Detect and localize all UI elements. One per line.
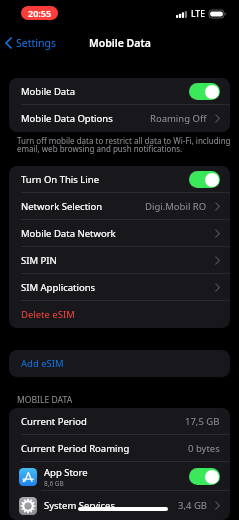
button[interactable]: App Store xyxy=(9,462,230,491)
button[interactable]: Delete eSIM xyxy=(9,301,230,328)
staticText: 17,5 GB xyxy=(185,415,220,428)
staticText: Mobile Data xyxy=(21,85,75,98)
button[interactable]: System Services xyxy=(9,491,230,520)
staticText: SIM Applications xyxy=(21,281,96,294)
button[interactable]: Current Period Roaming xyxy=(9,435,230,462)
staticText: Delete eSIM xyxy=(21,308,75,321)
button[interactable]: Toggle xyxy=(189,83,220,100)
button[interactable]: Current Period xyxy=(9,408,230,435)
staticText: SIM PIN xyxy=(21,254,57,267)
staticText: Turn On This Line xyxy=(21,173,99,186)
staticText: LTE xyxy=(191,8,205,20)
button[interactable]: Mobile Data xyxy=(9,78,230,105)
button[interactable]: Turn On This Line xyxy=(9,166,230,193)
staticText: MOBILE DATA xyxy=(17,394,73,406)
button[interactable]: Toggle xyxy=(189,468,220,485)
staticText: App Store xyxy=(44,466,88,479)
staticText: Current Period Roaming xyxy=(21,442,130,455)
staticText: Turn off mobile data to restrict all dat… xyxy=(17,135,233,154)
staticText: 20:55 xyxy=(28,7,52,19)
staticText: 0 bytes xyxy=(188,442,220,455)
staticText: Current Period xyxy=(21,415,87,428)
staticText: Settings xyxy=(16,36,56,50)
staticText: Mobile Data Network xyxy=(21,227,116,240)
staticText: System Services xyxy=(44,499,115,512)
button[interactable]: Add eSIM xyxy=(9,350,230,377)
button[interactable]: SIM Applications xyxy=(9,274,230,301)
staticText: Roaming Off xyxy=(150,112,207,125)
staticText: Add eSIM xyxy=(21,357,64,370)
staticText: 3,4 GB xyxy=(178,499,207,512)
staticText: 8,6 GB xyxy=(44,479,64,488)
button[interactable]: SIM PIN xyxy=(9,247,230,274)
button[interactable]: Settings xyxy=(0,36,64,50)
staticText: Mobile Data Options xyxy=(21,112,113,125)
staticText: Network Selection xyxy=(21,200,103,213)
button[interactable]: Mobile Data Options xyxy=(9,105,230,132)
button[interactable]: Network Selection xyxy=(9,193,230,220)
staticText: Digi.Mobil RO xyxy=(145,200,207,213)
button[interactable]: Mobile Data Network xyxy=(9,220,230,247)
button[interactable]: Toggle xyxy=(189,171,220,188)
staticText: Mobile Data xyxy=(89,36,151,50)
